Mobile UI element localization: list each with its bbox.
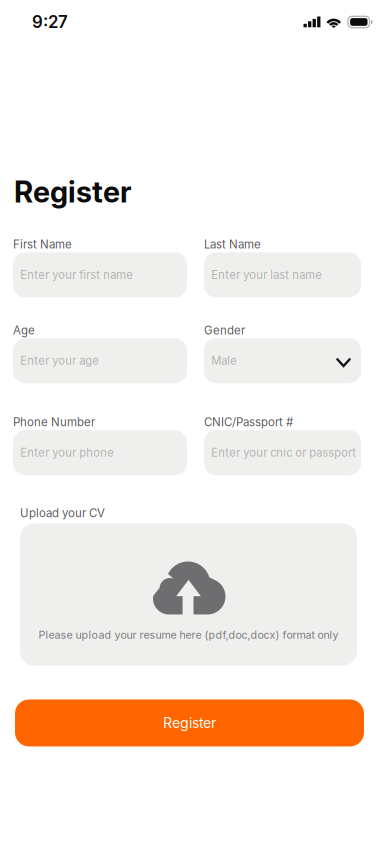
staticText: Last Name — [204, 237, 261, 251]
button[interactable]: Enter your cnic or passport — [204, 430, 361, 475]
button[interactable]: Enter your phone — [13, 430, 187, 475]
staticText: Enter your phone — [20, 446, 114, 459]
button[interactable]: Enter your age — [13, 338, 187, 383]
staticText: Male — [211, 354, 237, 368]
button[interactable]: Enter your first name — [13, 252, 187, 297]
staticText: Please upload your resume here (pdf,doc,… — [38, 628, 338, 641]
staticText: Gender — [204, 323, 245, 337]
staticText: Enter your first name — [20, 268, 133, 282]
button[interactable]: Enter your last name — [204, 252, 361, 297]
staticText: Enter your age — [20, 354, 99, 368]
staticText: Upload your CV — [20, 506, 105, 520]
button[interactable]: Register — [15, 699, 364, 746]
staticText: 9:27 — [32, 12, 68, 32]
staticText: Age — [13, 323, 35, 337]
staticText: Phone Number — [13, 415, 95, 429]
staticText: Register — [163, 714, 216, 731]
staticText: CNIC/Passport # — [204, 415, 293, 429]
button[interactable]: Please upload your resume here (pdf,doc,… — [20, 523, 357, 665]
staticText: Enter your last name — [211, 268, 322, 282]
staticText: Register — [14, 174, 132, 209]
button[interactable]: Male — [204, 338, 361, 383]
staticText: Enter your cnic or passport — [211, 446, 356, 459]
staticText: First Name — [13, 237, 72, 251]
